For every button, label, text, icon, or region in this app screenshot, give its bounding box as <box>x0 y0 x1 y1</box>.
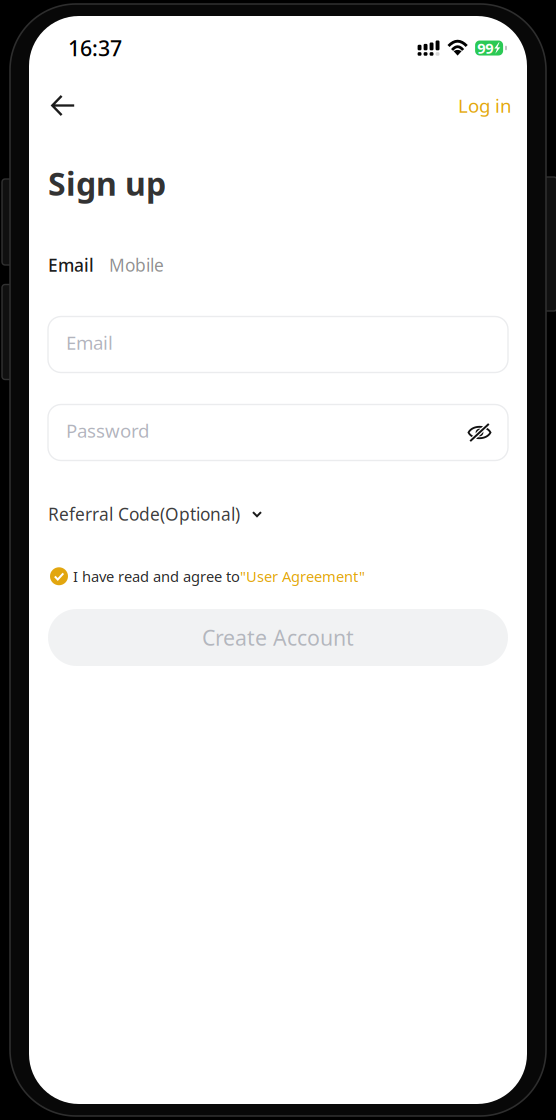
staticText: Referral Code(Optional) <box>48 502 240 525</box>
button[interactable]: Agree to User Agreement <box>50 567 68 585</box>
staticText: Create Account <box>202 623 354 652</box>
button[interactable]: Create Account <box>48 609 508 666</box>
button[interactable]: Email <box>48 253 94 276</box>
button[interactable]: Log in <box>442 80 527 131</box>
staticText: Email <box>66 330 113 355</box>
staticText: 16:37 <box>68 34 122 62</box>
button[interactable]: Referral Code(Optional) <box>48 502 262 525</box>
staticText: Mobile <box>109 253 164 276</box>
staticText: "User Agreement" <box>240 566 365 586</box>
staticText: 99 <box>477 38 493 58</box>
button[interactable]: "User Agreement" <box>240 566 365 586</box>
staticText: Email <box>48 253 94 276</box>
button[interactable]: Back <box>29 80 91 131</box>
staticText: Log in <box>458 93 512 118</box>
staticText: Password <box>66 418 149 443</box>
button[interactable]: Mobile <box>109 253 164 276</box>
staticText: Sign up <box>48 162 166 204</box>
staticText: I have read and agree to <box>73 566 240 586</box>
